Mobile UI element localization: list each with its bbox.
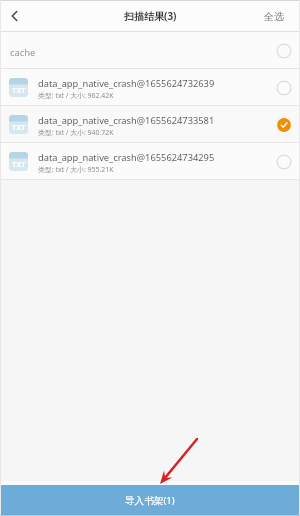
staticText: data_app_native_crash@1655624734295 [38, 151, 215, 164]
button[interactable]: 导入书架(1) [0, 485, 300, 516]
button[interactable]: TXT [0, 69, 300, 106]
staticText: data_app_native_crash@1655624733581 [38, 114, 215, 127]
staticText: 类型: txt / 大小: 955.21K [38, 165, 114, 174]
staticText: TXT [12, 159, 26, 169]
button[interactable]: cache [0, 32, 300, 69]
staticText: 类型: txt / 大小: 962.42K [38, 91, 114, 100]
button[interactable]: Back [0, 0, 28, 32]
staticText: 类型: txt / 大小: 940.72K [38, 128, 114, 137]
staticText: 全选 [264, 10, 284, 23]
button[interactable]: 全选 [252, 0, 300, 32]
staticText: data_app_native_crash@1655624732639 [38, 77, 215, 90]
staticText: 扫描结果(3) [124, 9, 177, 23]
button[interactable]: TXT [0, 143, 300, 180]
staticText: TXT [12, 122, 26, 132]
button[interactable]: TXT [0, 106, 300, 143]
staticText: cache [10, 46, 36, 59]
staticText: TXT [12, 85, 26, 95]
staticText: 导入书架(1) [125, 494, 175, 507]
